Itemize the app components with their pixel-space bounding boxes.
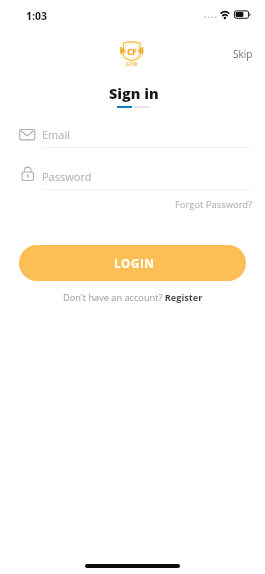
staticText: Sign in (109, 84, 159, 104)
staticText: Password (42, 169, 92, 184)
button[interactable]: Don't have an account? Register (63, 291, 203, 304)
staticText: GYM (126, 61, 138, 67)
staticText: LOGIN (114, 256, 155, 272)
button[interactable]: LOGIN (19, 245, 246, 281)
staticText: 1:03 (26, 9, 47, 23)
button[interactable]: Skip (228, 44, 258, 64)
staticText: Email (42, 127, 71, 142)
button[interactable]: Email (0, 120, 265, 156)
staticText: CF (127, 46, 137, 58)
staticText: Forgot Password? (175, 198, 253, 211)
staticText: Skip (233, 47, 253, 61)
button[interactable]: Password (0, 162, 265, 198)
button[interactable]: Forgot Password? (170, 194, 258, 215)
